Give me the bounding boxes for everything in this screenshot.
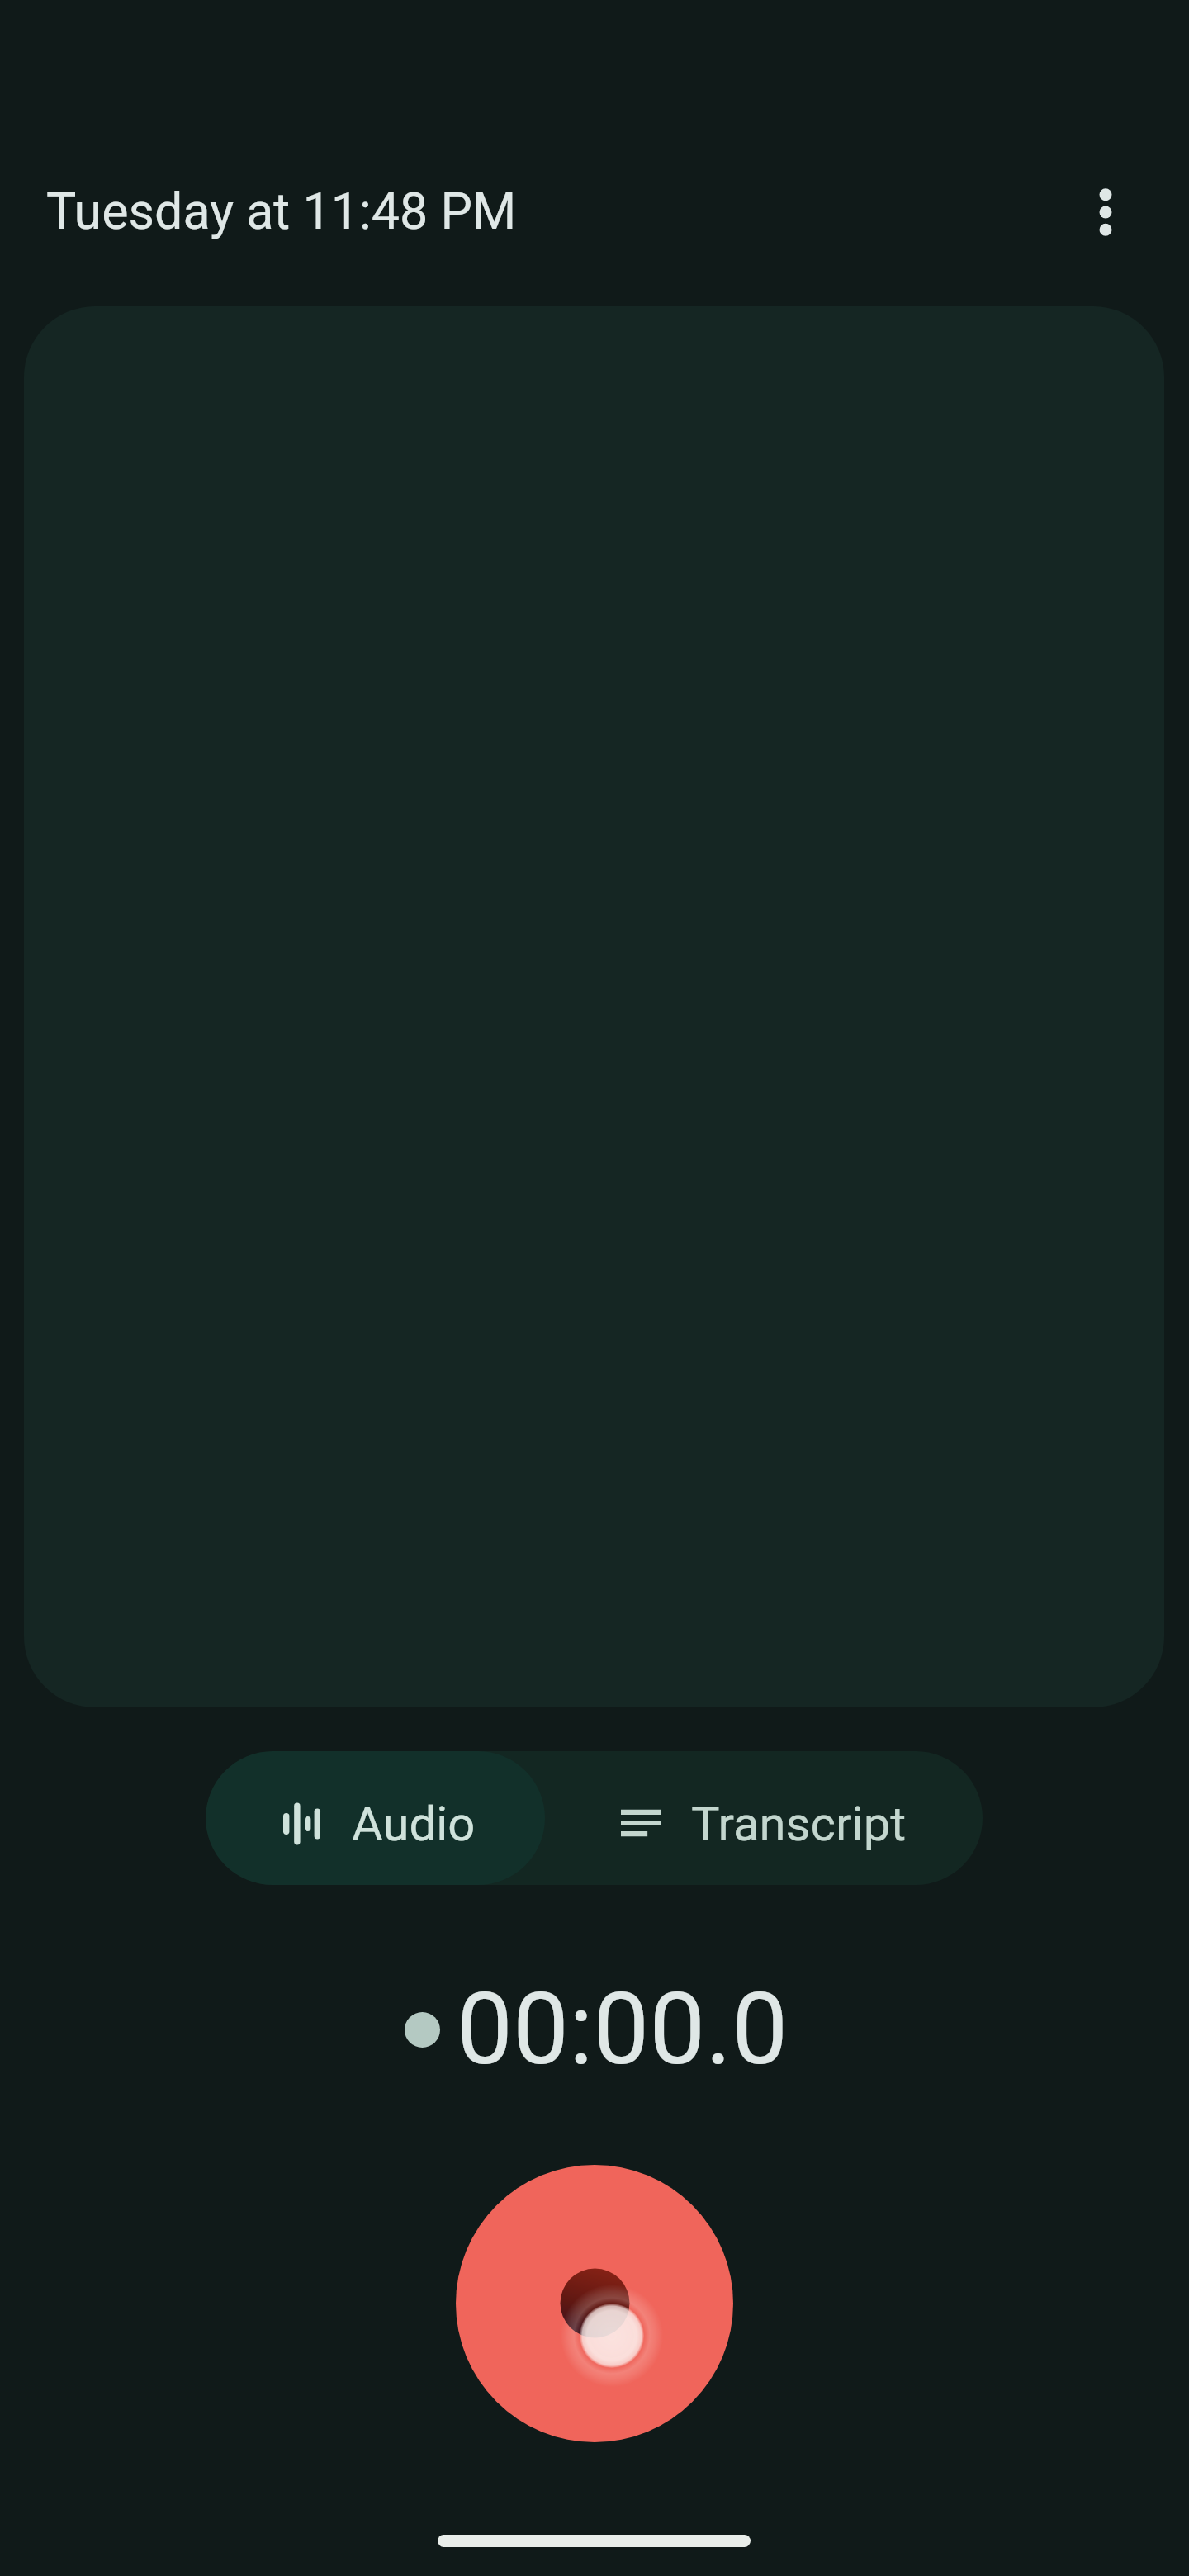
button[interactable]: Transcript xyxy=(545,1751,983,1885)
staticText: 00:00.0 xyxy=(457,1971,789,2078)
button[interactable]: Start recording xyxy=(456,2165,733,2442)
button[interactable]: Audio xyxy=(206,1751,545,1885)
staticText: Audio xyxy=(352,1796,476,1852)
staticText: Tuesday at 11:48 PM xyxy=(46,182,517,240)
button[interactable]: Tuesday at 11:48 PM xyxy=(46,151,517,270)
button[interactable]: More options xyxy=(1048,154,1163,270)
staticText: Transcript xyxy=(691,1796,907,1852)
